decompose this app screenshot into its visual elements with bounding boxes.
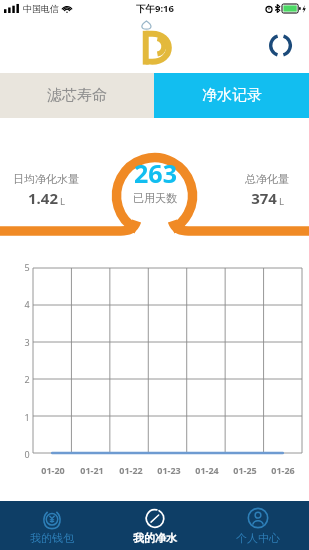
- staticText: 2: [24, 373, 30, 385]
- staticText: 3: [24, 336, 30, 348]
- staticText: 263: [134, 156, 177, 190]
- staticText: 个人中心: [236, 531, 280, 545]
- staticText: 我的净水: [133, 531, 177, 545]
- button[interactable]: 个人中心: [206, 501, 309, 550]
- staticText: 01-26: [271, 464, 295, 476]
- button[interactable]: 我的钱包: [0, 501, 103, 550]
- staticText: 滤芯寿命: [47, 86, 107, 105]
- button[interactable]: Refresh: [265, 30, 295, 60]
- staticText: 1.42: [28, 188, 58, 208]
- staticText: 0: [24, 448, 30, 460]
- staticText: L: [60, 195, 65, 208]
- button[interactable]: 净水记录: [154, 73, 309, 118]
- staticText: 我的钱包: [30, 531, 74, 545]
- staticText: 净水记录: [202, 86, 262, 105]
- staticText: 1: [24, 411, 30, 423]
- staticText: 01-23: [157, 464, 181, 476]
- staticText: 01-22: [119, 464, 143, 476]
- staticText: 中国电信: [23, 3, 59, 14]
- staticText: 4: [24, 298, 30, 310]
- staticText: 01-25: [233, 464, 257, 476]
- button[interactable]: 我的净水: [103, 501, 206, 550]
- staticText: 总净化量: [245, 172, 289, 186]
- staticText: 日均净化水量: [13, 172, 79, 186]
- button[interactable]: 滤芯寿命: [0, 73, 154, 118]
- staticText: 01-20: [41, 464, 65, 476]
- staticText: 374: [251, 188, 277, 208]
- staticText: 已用天数: [133, 191, 177, 205]
- staticText: 5: [24, 261, 30, 273]
- staticText: L: [279, 195, 284, 208]
- staticText: 01-21: [80, 464, 104, 476]
- staticText: 下午9:16: [136, 2, 174, 15]
- staticText: 01-24: [195, 464, 219, 476]
